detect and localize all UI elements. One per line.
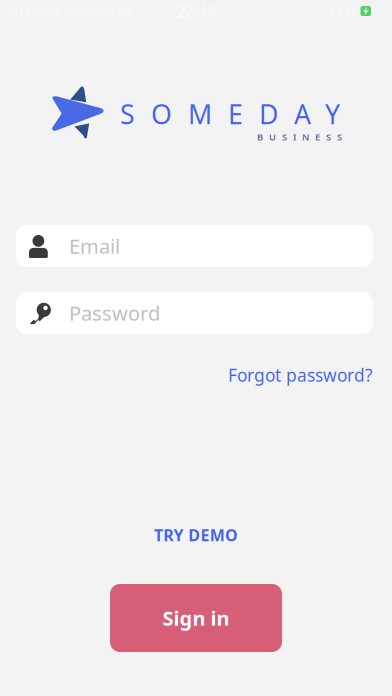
staticText: Password (69, 300, 160, 326)
staticText: Forgot password? (228, 363, 373, 386)
staticText: BUSINESS (257, 131, 342, 143)
staticText: TRY DEMO (154, 524, 238, 546)
staticText: Sign in (162, 605, 229, 631)
staticText: SOMEDAY (120, 96, 340, 132)
button[interactable]: Email (16, 225, 373, 267)
button[interactable]: TRY DEMO (131, 520, 261, 550)
button[interactable]: Sign in (110, 584, 282, 652)
button[interactable]: Forgot password? (193, 361, 373, 389)
staticText: Email (69, 233, 120, 259)
button[interactable]: Password (16, 292, 373, 334)
